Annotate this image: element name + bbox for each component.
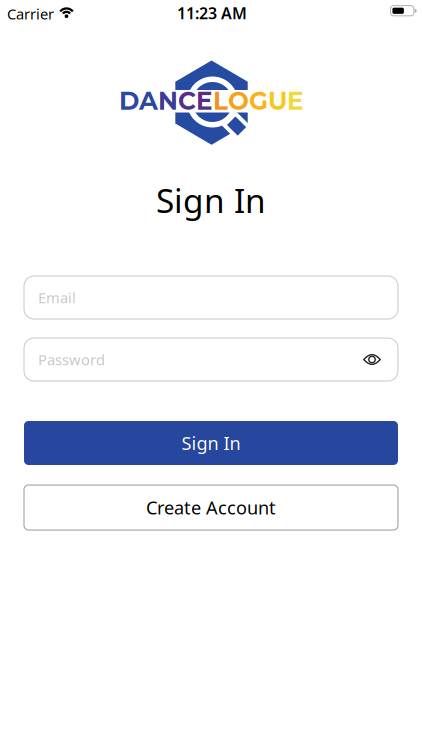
- staticText: Sign In: [181, 431, 240, 455]
- staticText: Carrier: [7, 4, 54, 23]
- staticText: L: [213, 86, 228, 116]
- staticText: N: [158, 86, 178, 116]
- button[interactable]: Create Account: [24, 485, 398, 530]
- staticText: Password: [38, 350, 105, 369]
- staticText: Sign In: [156, 178, 266, 222]
- staticText: E: [196, 86, 213, 116]
- button[interactable]: Email: [24, 276, 398, 319]
- staticText: 11:23 AM: [177, 2, 247, 24]
- staticText: C: [178, 86, 196, 116]
- staticText: O: [228, 86, 249, 116]
- staticText: D: [119, 86, 139, 116]
- staticText: G: [249, 86, 268, 116]
- staticText: U: [268, 86, 287, 116]
- staticText: E: [287, 86, 304, 116]
- staticText: A: [139, 86, 158, 116]
- button[interactable]: Sign In: [24, 421, 398, 465]
- staticText: Create Account: [146, 495, 276, 520]
- staticText: Email: [38, 288, 76, 307]
- button[interactable]: Show password: [363, 353, 381, 366]
- button[interactable]: Password: [24, 338, 398, 381]
